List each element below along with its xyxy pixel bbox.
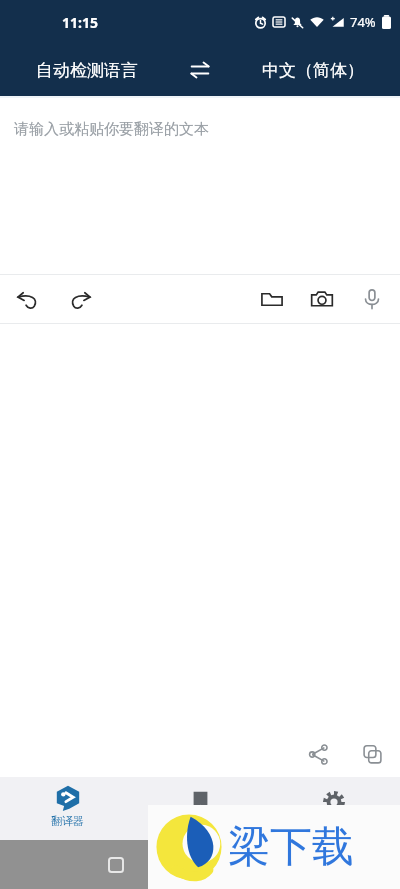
button[interactable]: Swap languages (174, 44, 226, 96)
staticText: 11:15 (62, 13, 98, 32)
staticText: 请输入或粘贴你要翻译的文本 (14, 120, 209, 139)
button[interactable]: Copy (352, 734, 392, 774)
button[interactable]: Voice input (352, 279, 392, 319)
staticText: 74% (350, 13, 376, 31)
staticText: 自动检测语言 (36, 60, 138, 81)
button[interactable]: 中文（简体） (226, 44, 400, 96)
staticText: 翻译器 (51, 814, 84, 828)
button[interactable]: Redo (60, 279, 100, 319)
button[interactable]: Settings (267, 777, 400, 840)
button[interactable]: Recents (104, 853, 128, 877)
button[interactable]: Camera (302, 279, 342, 319)
button[interactable]: Bookmarks (134, 777, 267, 840)
staticText: 中文（简体） (262, 60, 364, 81)
button[interactable]: Open file (252, 279, 292, 319)
button[interactable]: Undo (8, 279, 48, 319)
button[interactable]: 请输入或粘贴你要翻译的文本 (0, 98, 400, 274)
button[interactable]: Share (298, 734, 338, 774)
button[interactable]: 自动检测语言 (0, 44, 174, 96)
button[interactable]: 翻译器 (0, 777, 134, 840)
staticText: 梁下载 (228, 821, 354, 874)
